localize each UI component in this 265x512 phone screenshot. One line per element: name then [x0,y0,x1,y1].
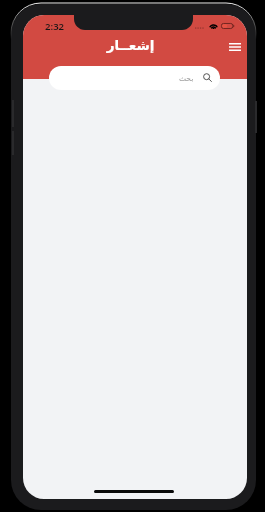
button[interactable]: Menu [223,38,246,55]
staticText: بحث [179,74,194,83]
staticText: 2:32 [45,20,65,33]
staticText: إشعــار [105,37,156,53]
button[interactable]: بحث [49,66,220,90]
